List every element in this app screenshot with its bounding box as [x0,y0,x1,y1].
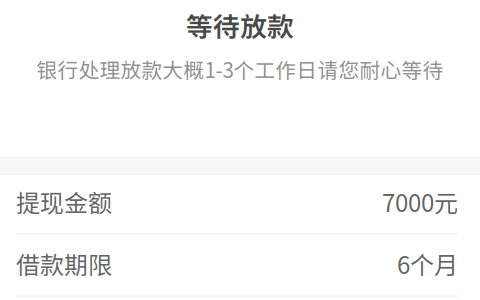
staticText: 银行处理放款大概1-3个工作日请您耐心等待 [36,54,443,84]
staticText: 提现金额 [16,184,112,219]
staticText: 等待放款 [186,6,294,44]
staticText: 7000元 [382,184,458,219]
button[interactable]: 借款期限 [0,235,480,295]
button[interactable]: 提现金额 [0,175,480,233]
staticText: 借款期限 [16,246,112,281]
staticText: 6个月 [397,246,458,281]
